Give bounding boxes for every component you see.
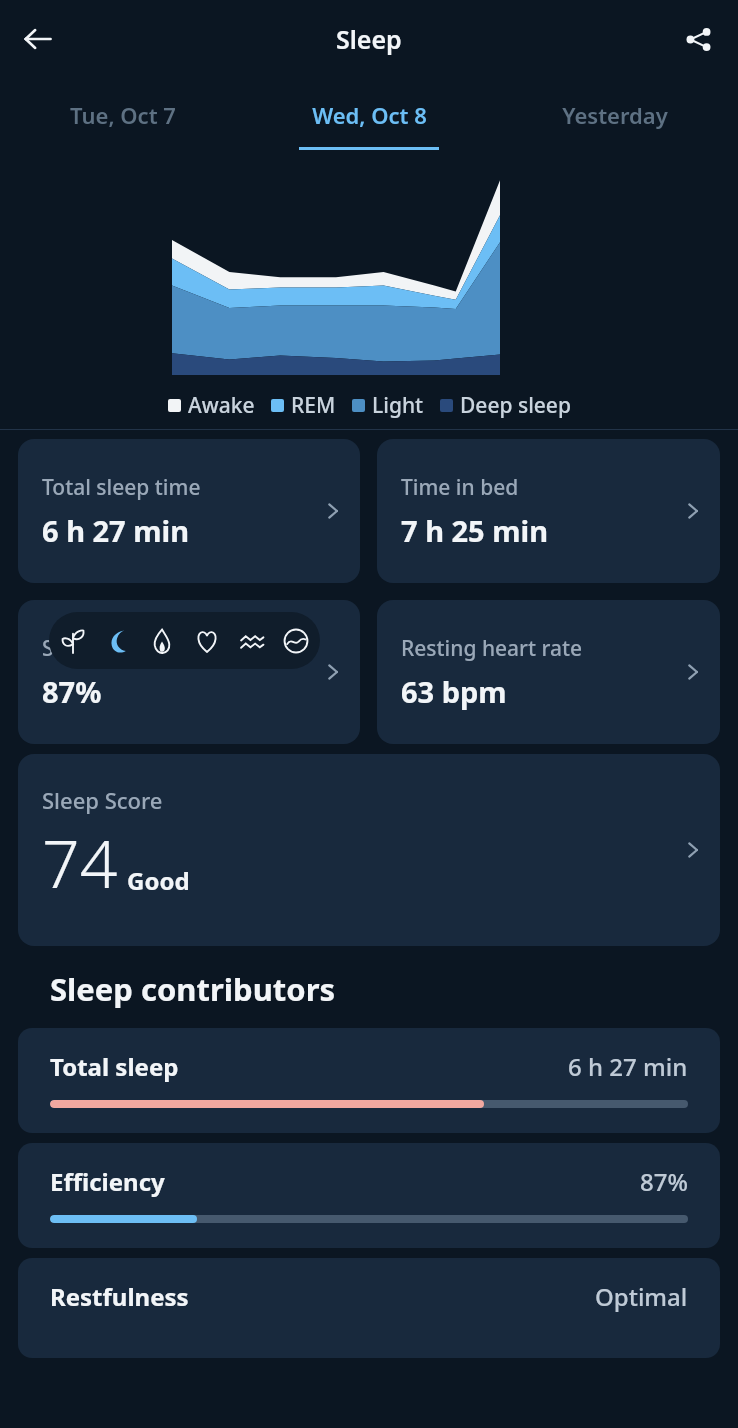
staticText: REM xyxy=(291,391,336,420)
button[interactable]: Share xyxy=(672,13,724,65)
button[interactable]: Total sleep xyxy=(18,1028,720,1133)
staticText: Time in bed xyxy=(401,473,519,502)
button[interactable]: Sleep xyxy=(96,620,138,662)
staticText: 6 h 27 min xyxy=(568,1050,688,1083)
button[interactable]: Restfulness xyxy=(18,1258,720,1358)
staticText: Restfulness xyxy=(50,1280,189,1313)
button[interactable]: Yesterday xyxy=(492,77,738,169)
staticText: 7 h 25 min xyxy=(401,511,549,550)
staticText: Tue, Oct 7 xyxy=(70,100,176,130)
staticText: Light xyxy=(372,391,424,420)
staticText: 87% xyxy=(42,672,102,711)
staticText: Sleep Score xyxy=(42,785,163,815)
staticText: Total sleep xyxy=(50,1050,179,1083)
button[interactable]: Back xyxy=(12,13,64,65)
button[interactable]: Activity xyxy=(141,620,183,662)
staticText: Deep sleep xyxy=(460,391,571,420)
staticText: 74 xyxy=(42,817,118,907)
staticText: Optimal xyxy=(595,1280,688,1313)
staticText: Yesterday xyxy=(562,100,668,130)
button[interactable]: Efficiency xyxy=(18,1143,720,1248)
button[interactable]: Wed, Oct 8 xyxy=(246,77,492,169)
staticText: Total sleep time xyxy=(42,473,201,502)
staticText: 87% xyxy=(640,1165,688,1198)
button[interactable]: Trends xyxy=(231,620,273,662)
button[interactable]: Tue, Oct 7 xyxy=(0,77,246,169)
staticText: 6 h 27 min xyxy=(42,511,190,550)
staticText: Wed, Oct 8 xyxy=(312,100,427,130)
button[interactable]: Sleep Score xyxy=(18,754,720,946)
button[interactable]: Readiness xyxy=(52,620,94,662)
button[interactable]: Resting heart rate xyxy=(377,600,720,744)
staticText: Sleep xyxy=(336,22,402,56)
button[interactable]: Profile xyxy=(275,620,317,662)
staticText: Resting heart rate xyxy=(401,634,583,663)
staticText: Efficiency xyxy=(50,1165,165,1198)
button[interactable]: Heart rate xyxy=(186,620,228,662)
staticText: Awake xyxy=(188,391,255,420)
staticText: Sleep contributors xyxy=(50,968,336,1010)
button[interactable]: Time in bed xyxy=(377,439,720,583)
button[interactable]: Sleep efficiency xyxy=(18,600,360,744)
button[interactable]: Total sleep time xyxy=(18,439,360,583)
staticText: Sleep efficiency xyxy=(42,634,198,663)
staticText: Good xyxy=(127,864,190,897)
staticText: 63 bpm xyxy=(401,672,507,711)
